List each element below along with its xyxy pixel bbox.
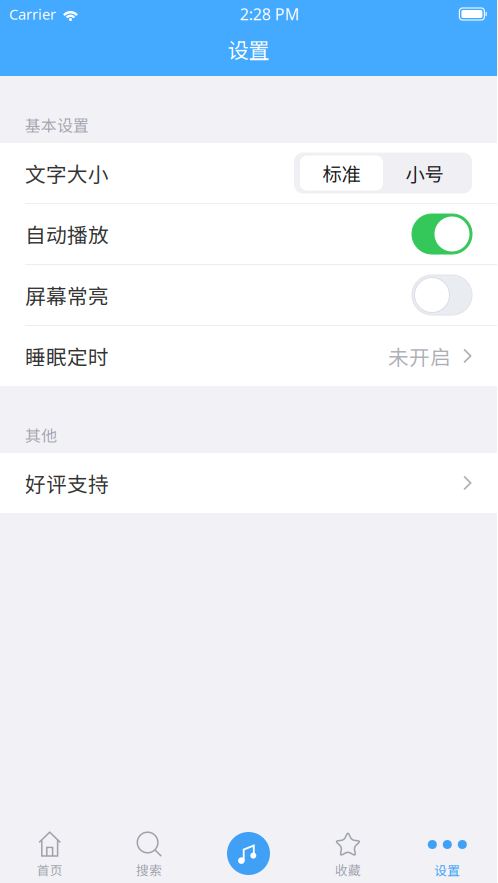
button[interactable]: 标准 xyxy=(300,155,383,190)
button[interactable]: 搜索 xyxy=(99,820,199,883)
button[interactable]: 首页 xyxy=(0,820,99,883)
button[interactable]: 设置 xyxy=(398,820,497,883)
button[interactable]: 睡眠定时 xyxy=(0,326,497,386)
staticText: 设置 xyxy=(227,34,269,64)
staticText: 睡眠定时 xyxy=(25,341,109,371)
staticText: 收藏 xyxy=(335,861,361,879)
button[interactable]: Play music xyxy=(199,820,298,883)
staticText: 自动播放 xyxy=(25,219,109,249)
staticText: 其他 xyxy=(25,423,57,446)
button[interactable]: 好评支持 xyxy=(0,453,497,513)
staticText: 搜索 xyxy=(136,861,162,879)
staticText: 小号 xyxy=(405,159,443,187)
staticText: 设置 xyxy=(434,861,460,879)
staticText: 未开启 xyxy=(388,341,451,371)
staticText: 标准 xyxy=(322,159,360,187)
staticText: 基本设置 xyxy=(25,113,89,136)
staticText: 2:28 PM xyxy=(240,3,300,25)
button[interactable]: 文字大小 xyxy=(0,143,497,203)
staticText: 屏幕常亮 xyxy=(25,280,109,310)
button[interactable]: 收藏 xyxy=(298,820,398,883)
button[interactable]: 自动播放 xyxy=(0,204,497,264)
staticText: 好评支持 xyxy=(25,468,109,498)
button[interactable]: 屏幕常亮 xyxy=(0,265,497,325)
staticText: Carrier xyxy=(9,4,56,24)
staticText: 首页 xyxy=(37,861,63,879)
staticText: 文字大小 xyxy=(25,158,109,188)
button[interactable]: 小号 xyxy=(383,155,466,190)
